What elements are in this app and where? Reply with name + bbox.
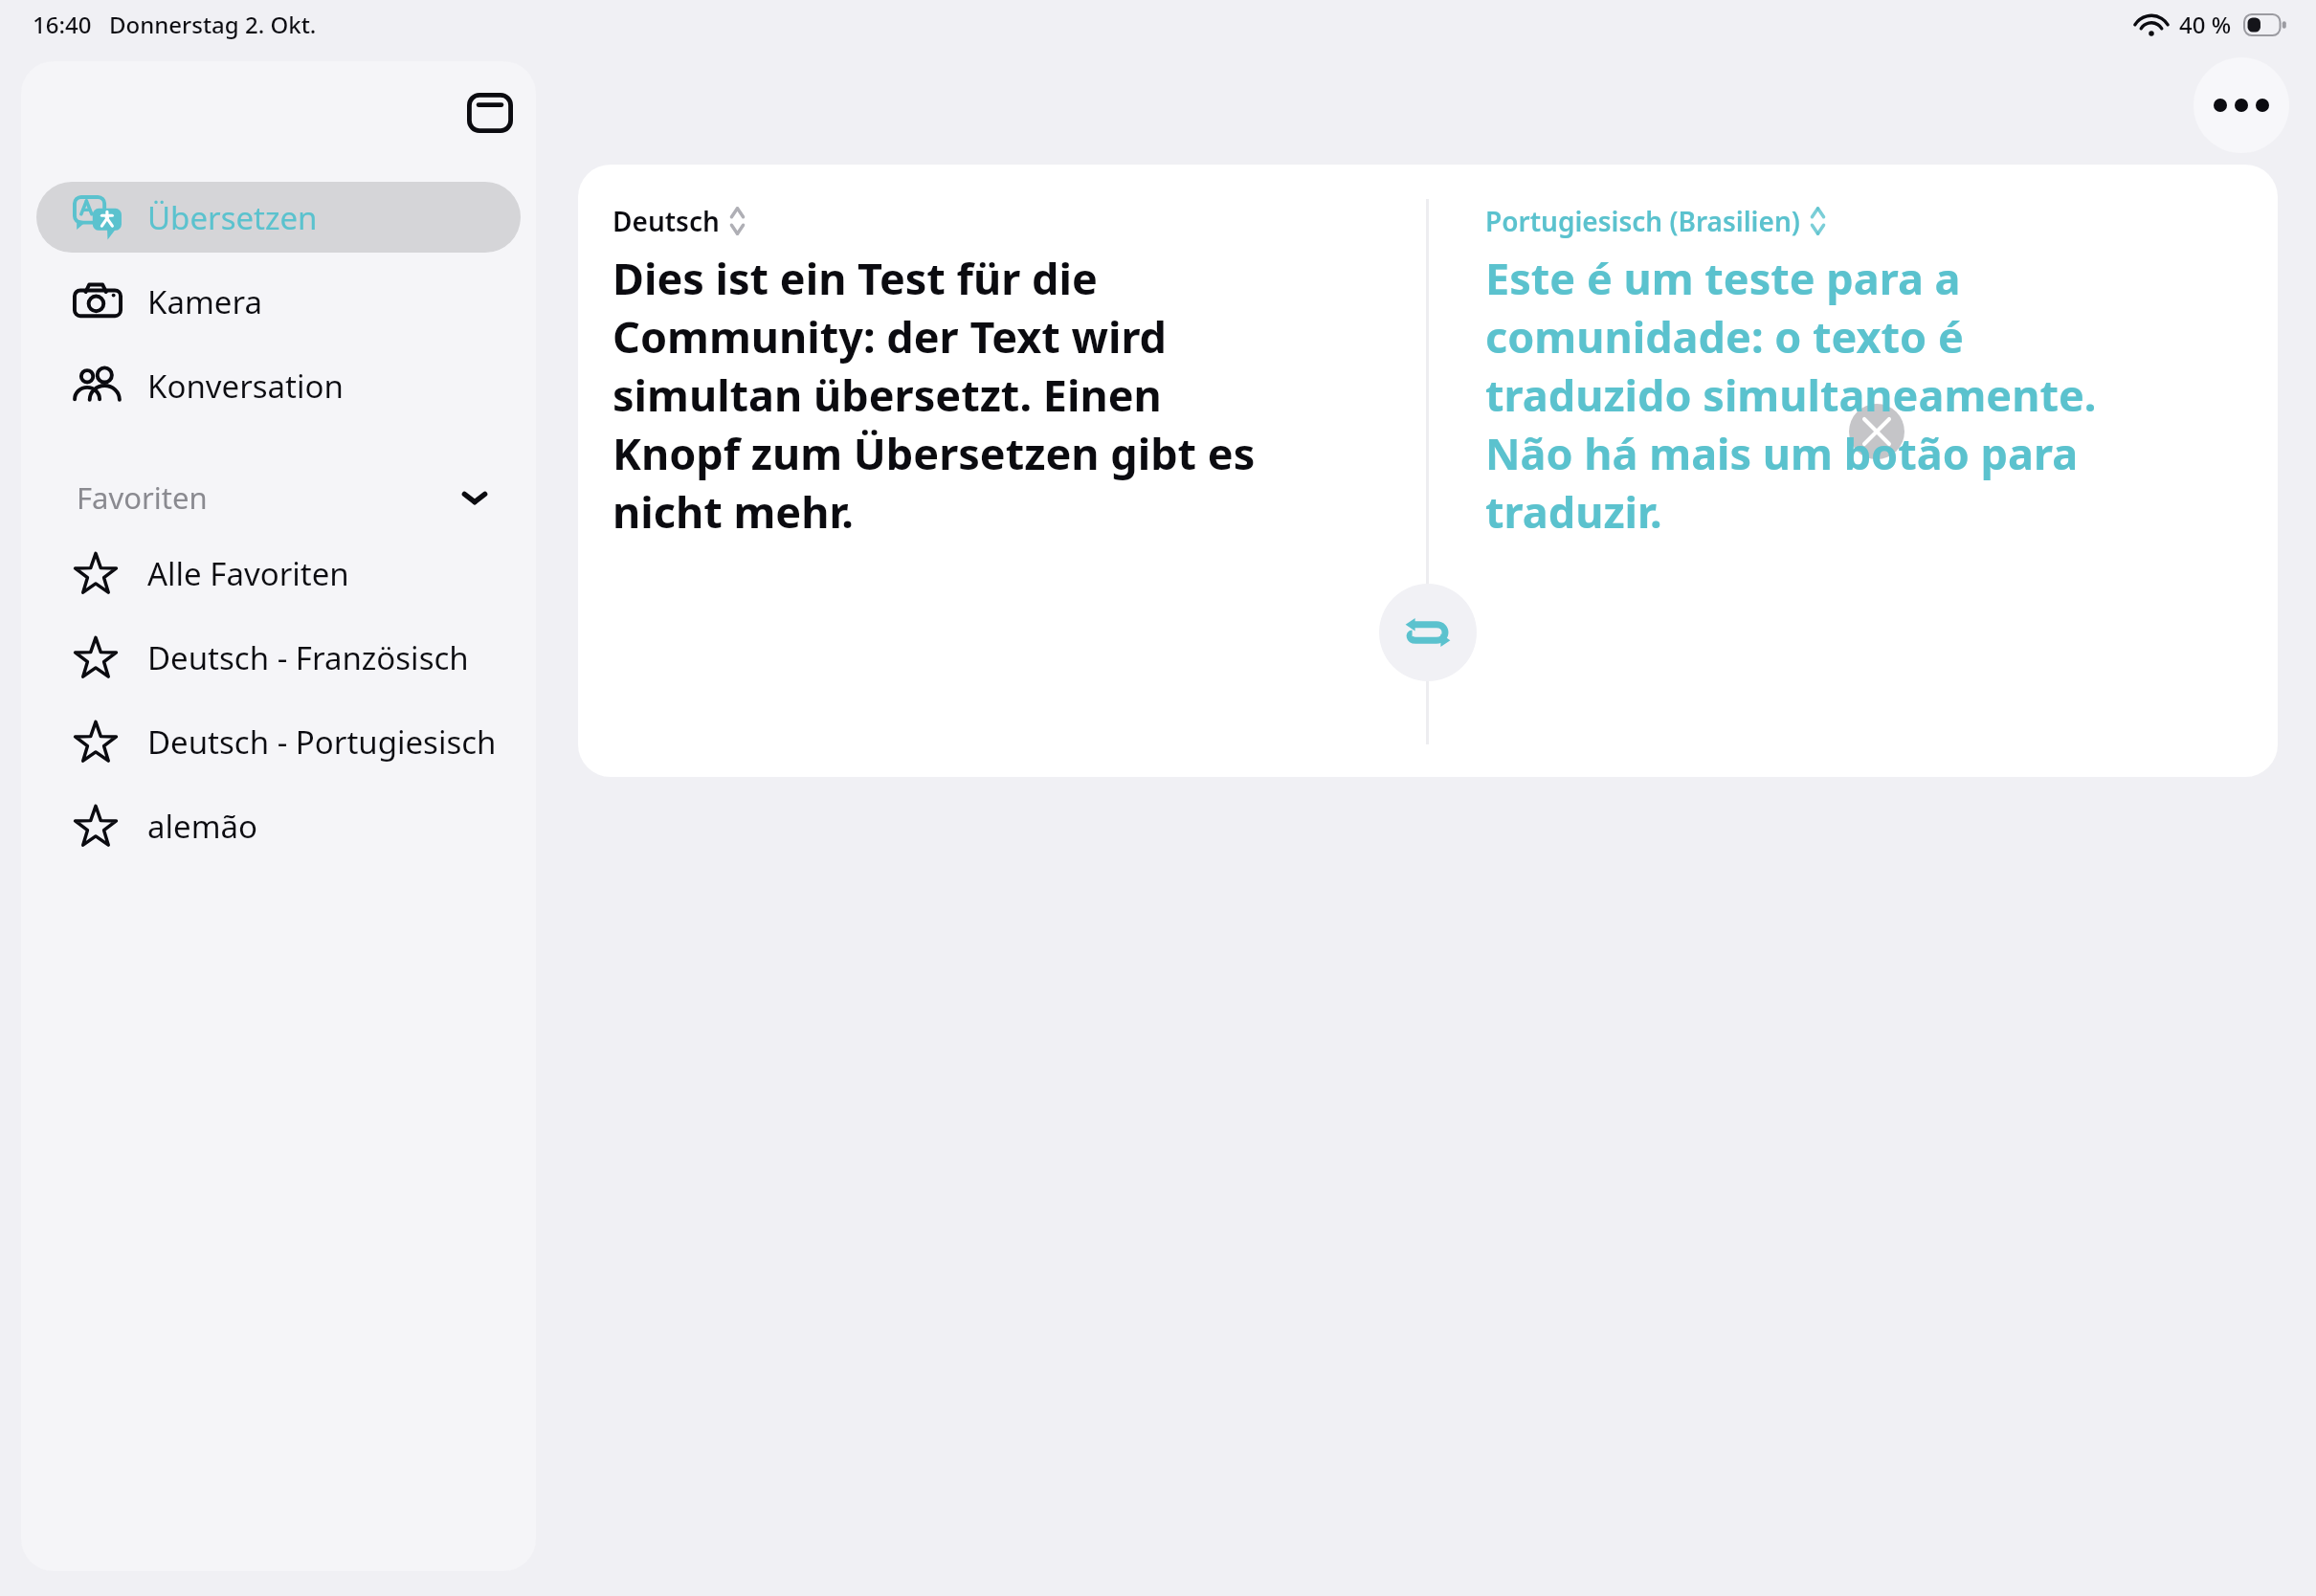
button[interactable]: Portugiesisch (Brasilien) [1485,203,1827,239]
staticText: 16:40 [33,9,92,40]
button[interactable]: Sprachen tauschen [1379,584,1477,681]
button[interactable]: Seitenleiste [454,77,526,149]
staticText: Deutsch - Portugiesisch [147,720,497,764]
staticText: Deutsch [612,203,720,239]
button[interactable]: Text löschen [1849,404,1904,459]
button[interactable]: Konversation [36,350,521,421]
button[interactable]: Deutsch - Portugiesisch [36,706,521,777]
button[interactable]: Übersetzen [36,182,521,253]
staticText: Konversation [147,365,344,408]
button[interactable]: Weitere Optionen [2194,57,2289,153]
button[interactable]: Alle Favoriten [36,538,521,609]
staticText: Deutsch - Französisch [147,636,469,679]
staticText: Favoriten [77,477,208,518]
button[interactable]: Favoriten [21,461,536,534]
button[interactable]: Deutsch - Französisch [36,622,521,693]
staticText: Este é um teste para a comunidade: o tex… [1485,249,2174,541]
button[interactable]: Deutsch [612,203,746,239]
staticText: Übersetzen [147,196,318,239]
staticText: Portugiesisch (Brasilien) [1485,203,1800,239]
staticText: Kamera [147,280,262,323]
staticText: Alle Favoriten [147,552,349,595]
staticText: alemão [147,805,257,848]
staticText: Donnerstag 2. Okt. [109,9,317,40]
staticText: Dies ist ein Test für die Community: der… [612,249,1282,541]
button[interactable]: alemão [36,790,521,861]
staticText: 40 % [2179,9,2232,40]
button[interactable]: Kamera [36,266,521,337]
